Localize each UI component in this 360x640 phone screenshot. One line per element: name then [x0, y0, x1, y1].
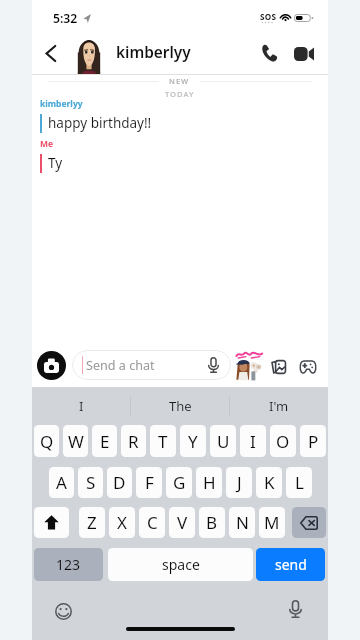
- button[interactable]: S: [78, 467, 103, 498]
- staticText: space: [162, 555, 200, 574]
- staticText: TODAY: [165, 89, 195, 99]
- staticText: happy birthday!!: [48, 114, 152, 132]
- staticText: R: [128, 430, 139, 453]
- staticText: The: [169, 397, 192, 415]
- staticText: E: [100, 430, 110, 453]
- staticText: M: [264, 511, 280, 534]
- staticText: kimberlyy: [40, 98, 83, 110]
- button[interactable]: L: [286, 467, 312, 498]
- staticText: D: [113, 471, 126, 494]
- staticText: Y: [188, 430, 198, 453]
- staticText: C: [147, 511, 158, 534]
- staticText: G: [173, 471, 186, 494]
- button[interactable]: K: [256, 467, 282, 498]
- staticText: A: [56, 471, 67, 494]
- button[interactable]: kimberlyy: [32, 98, 328, 133]
- button[interactable]: Backspace: [292, 507, 326, 538]
- button[interactable]: Voice note: [203, 355, 223, 375]
- staticText: H: [203, 471, 216, 494]
- button[interactable]: T: [150, 425, 176, 457]
- button[interactable]: N: [229, 507, 255, 538]
- button[interactable]: 123: [34, 548, 103, 581]
- button[interactable]: Sticker suggestion: [234, 349, 264, 381]
- button[interactable]: Y: [180, 425, 206, 457]
- button[interactable]: A: [49, 467, 74, 498]
- staticText: I: [79, 397, 84, 415]
- button[interactable]: W: [63, 425, 88, 457]
- staticText: Z: [87, 511, 97, 534]
- staticText: NEW: [169, 76, 190, 86]
- button[interactable]: Back: [38, 32, 64, 75]
- staticText: U: [217, 430, 230, 453]
- button[interactable]: P: [300, 425, 326, 457]
- staticText: O: [276, 430, 290, 453]
- button[interactable]: Z: [79, 507, 105, 538]
- staticText: B: [206, 511, 218, 534]
- button[interactable]: U: [210, 425, 236, 457]
- button[interactable]: I: [32, 387, 130, 425]
- button[interactable]: space: [108, 548, 253, 581]
- button[interactable]: Stickers: [264, 353, 292, 381]
- button[interactable]: O: [270, 425, 296, 457]
- staticText: I: [250, 430, 256, 453]
- button[interactable]: H: [196, 467, 222, 498]
- button[interactable]: J: [226, 467, 252, 498]
- button[interactable]: Me: [32, 138, 328, 173]
- button[interactable]: Camera: [37, 351, 66, 380]
- button[interactable]: C: [139, 507, 165, 538]
- button[interactable]: Profile: [76, 34, 102, 75]
- staticText: send: [275, 555, 307, 574]
- staticText: F: [145, 471, 154, 494]
- button[interactable]: The: [131, 387, 229, 425]
- staticText: I'm: [269, 397, 289, 415]
- staticText: K: [264, 471, 275, 494]
- button[interactable]: Shift: [34, 507, 69, 538]
- button[interactable]: I: [240, 425, 266, 457]
- button[interactable]: D: [107, 467, 132, 498]
- staticText: 123: [56, 555, 81, 574]
- staticText: SOS: [260, 11, 277, 22]
- staticText: S: [86, 471, 96, 494]
- button[interactable]: I'm: [230, 387, 328, 425]
- button[interactable]: R: [121, 425, 146, 457]
- button[interactable]: V: [169, 507, 195, 538]
- button[interactable]: M: [259, 507, 285, 538]
- button[interactable]: Call: [254, 32, 284, 75]
- staticText: 5:32: [53, 10, 78, 27]
- button[interactable]: Emoji: [50, 598, 76, 624]
- staticText: Q: [40, 430, 54, 453]
- staticText: J: [237, 471, 242, 494]
- staticText: Send a chat: [86, 357, 155, 374]
- button[interactable]: E: [92, 425, 117, 457]
- button[interactable]: B: [199, 507, 225, 538]
- button[interactable]: X: [109, 507, 135, 538]
- button[interactable]: send: [256, 548, 325, 581]
- staticText: W: [68, 430, 84, 453]
- staticText: N: [236, 511, 249, 534]
- button[interactable]: F: [136, 467, 162, 498]
- staticText: V: [177, 511, 188, 534]
- staticText: P: [308, 430, 319, 453]
- button[interactable]: kimberlyy: [116, 42, 191, 63]
- staticText: Ty: [48, 154, 63, 172]
- button[interactable]: Games: [294, 353, 322, 381]
- button[interactable]: Dictation: [282, 596, 308, 622]
- staticText: Me: [40, 138, 54, 150]
- button[interactable]: Send a chat: [72, 350, 231, 380]
- button[interactable]: G: [166, 467, 192, 498]
- staticText: X: [117, 511, 127, 534]
- button[interactable]: Video call: [289, 32, 319, 75]
- button[interactable]: Q: [34, 425, 59, 457]
- staticText: T: [158, 430, 168, 453]
- staticText: L: [295, 471, 304, 494]
